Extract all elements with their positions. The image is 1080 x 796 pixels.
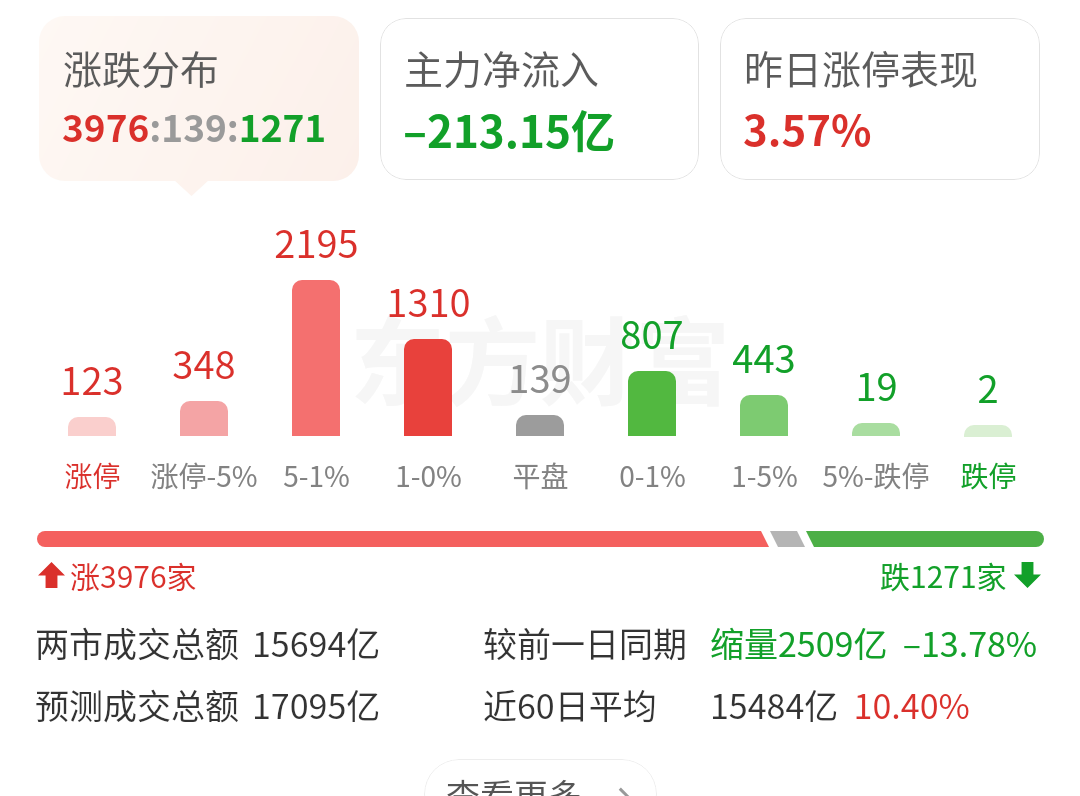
- button[interactable]: 2: [932, 210, 1044, 492]
- staticText: 3976:139:1271: [62, 99, 327, 153]
- staticText: 3.57%: [743, 97, 872, 158]
- staticText: 昨日涨停表现: [744, 39, 979, 95]
- staticText: 跌停: [960, 455, 1017, 496]
- staticText: 0-1%: [619, 455, 686, 496]
- staticText: 5-1%: [283, 455, 350, 496]
- staticText: 443: [732, 329, 796, 384]
- other: Declining stocks: [1014, 562, 1041, 588]
- staticText: 1310: [386, 273, 471, 328]
- button[interactable]: 123: [36, 210, 148, 492]
- staticText: 123: [60, 351, 124, 406]
- button[interactable]: 443: [708, 210, 820, 492]
- button[interactable]: Advancing stocks: [35, 553, 189, 597]
- staticText: 1-5%: [731, 455, 798, 496]
- button[interactable]: 19: [820, 210, 932, 492]
- staticText: 涨3976家: [70, 553, 197, 596]
- staticText: 15694亿: [252, 618, 381, 667]
- staticText: 15484亿 10.40%: [710, 680, 970, 729]
- staticText: 348: [172, 335, 236, 390]
- button[interactable]: 807: [596, 210, 708, 492]
- button[interactable]: 348: [148, 210, 260, 492]
- staticText: 缩量2509亿 –13.78%: [710, 618, 1038, 667]
- staticText: 139: [508, 349, 572, 404]
- staticText: –213.15亿: [403, 97, 616, 161]
- staticText: 较前一日同期: [483, 618, 687, 667]
- staticText: 预测成交总额: [35, 680, 239, 729]
- button[interactable]: 跌1271家: [880, 553, 1034, 597]
- button[interactable]: 查看更多: [424, 759, 657, 796]
- staticText: 查看更多: [446, 770, 582, 796]
- staticText: 涨跌分布: [63, 39, 220, 95]
- button[interactable]: 昨日涨停表现: [720, 18, 1040, 196]
- staticText: 19: [855, 357, 898, 412]
- button[interactable]: 2195: [260, 210, 372, 492]
- staticText: 807: [620, 305, 684, 360]
- staticText: 跌1271家: [880, 553, 1007, 596]
- staticText: 1-0%: [395, 455, 462, 496]
- button[interactable]: 139: [484, 210, 596, 492]
- button[interactable]: 涨跌分布: [39, 16, 359, 197]
- staticText: 主力净流入: [404, 39, 600, 95]
- button[interactable]: 1310: [372, 210, 484, 492]
- staticText: 涨停-5%: [150, 455, 258, 496]
- staticText: 2: [977, 359, 999, 414]
- staticText: 近60日平均: [483, 680, 657, 729]
- staticText: 涨停: [64, 455, 121, 496]
- button[interactable]: 主力净流入: [380, 18, 699, 196]
- staticText: 两市成交总额: [35, 618, 239, 667]
- staticText: 17095亿: [252, 680, 381, 729]
- staticText: 东方财富: [350, 288, 731, 426]
- other: Advancing stocks: [38, 562, 65, 588]
- staticText: 5%-跌停: [822, 455, 930, 496]
- staticText: 2195: [274, 214, 359, 269]
- staticText: 平盘: [512, 455, 569, 496]
